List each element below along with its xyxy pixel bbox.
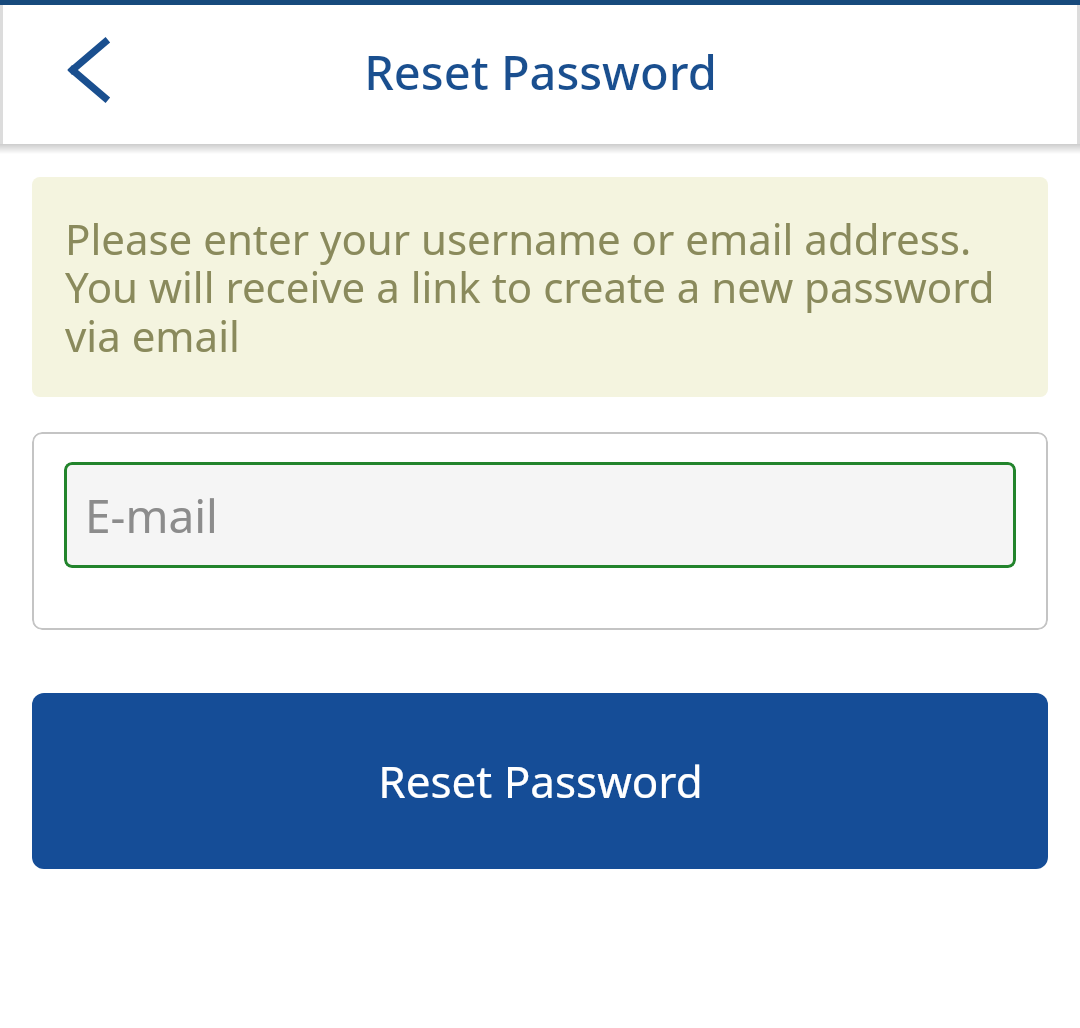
staticText: Reset Password [378,751,703,811]
button[interactable]: E-mail [64,462,1016,568]
button[interactable]: Reset Password [32,693,1048,869]
staticText: Reset Password [364,40,717,104]
button[interactable]: Back [40,15,140,125]
staticText: E-mail [85,484,218,547]
staticText: Please enter your username or email addr… [65,210,1024,365]
